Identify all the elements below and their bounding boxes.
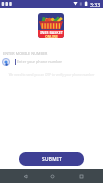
staticText: ENTER MOBILE NUMBER [3, 51, 48, 56]
staticText: ONLINE [45, 35, 58, 38]
staticText: 3:33 [90, 1, 101, 8]
staticText: We need to send you an OTP to verify you… [0, 73, 103, 77]
staticText: Enter your phone number [17, 59, 63, 64]
staticText: INES BASKET [40, 30, 63, 35]
staticText: SUBMIT [42, 156, 62, 163]
button[interactable]: Home [44, 169, 61, 183]
button[interactable]: Back [17, 169, 34, 183]
button[interactable]: SUBMIT [19, 152, 84, 166]
button[interactable]: Recent apps [73, 169, 90, 183]
